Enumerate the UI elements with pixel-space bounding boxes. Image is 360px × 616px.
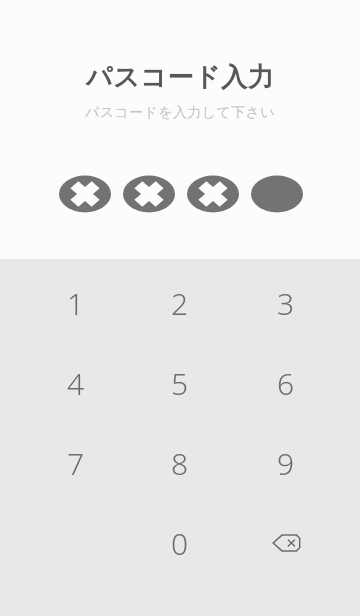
staticText: パスコード入力 (0, 61, 360, 94)
button[interactable]: 9 (243, 426, 329, 500)
button[interactable]: 6 (243, 346, 329, 420)
staticText: 8 (171, 443, 189, 484)
button[interactable]: 7 (33, 426, 119, 500)
button[interactable]: 0 (137, 506, 223, 580)
staticText: 9 (277, 443, 295, 484)
button[interactable]: 8 (137, 426, 223, 500)
button[interactable]: 2 (137, 266, 223, 340)
button[interactable]: 1 (33, 266, 119, 340)
staticText: 2 (171, 283, 189, 324)
staticText: 1 (67, 283, 85, 324)
button[interactable]: 3 (243, 266, 329, 340)
staticText: 6 (277, 363, 295, 404)
staticText: 5 (171, 363, 189, 404)
staticText: 3 (277, 283, 295, 324)
staticText: 4 (67, 363, 85, 404)
button[interactable]: 4 (33, 346, 119, 420)
staticText: 0 (171, 523, 189, 564)
staticText: パスコードを入力して下さい (0, 104, 360, 122)
staticText: 7 (67, 443, 85, 484)
button[interactable]: 5 (137, 346, 223, 420)
button[interactable]: Backspace (243, 506, 329, 580)
